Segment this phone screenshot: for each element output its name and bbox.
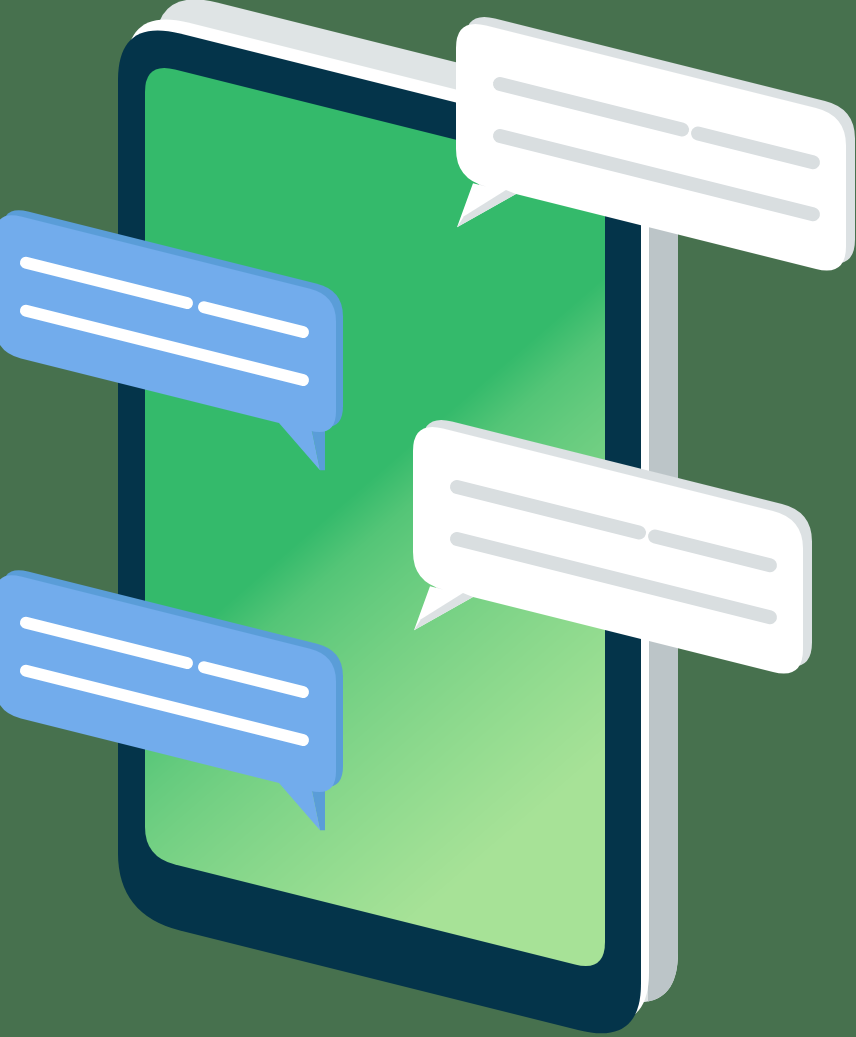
button[interactable]: Chat messages illustration: [0, 0, 856, 1037]
